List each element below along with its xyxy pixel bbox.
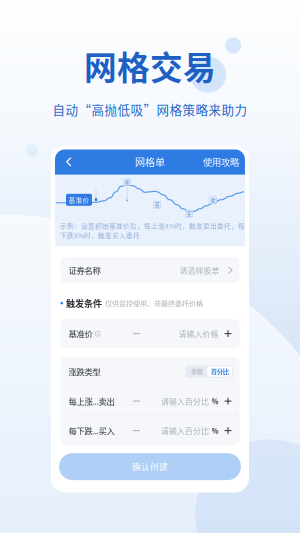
staticText: 基准价 (68, 195, 89, 205)
staticText: 网格交易 (84, 42, 216, 89)
button[interactable]: Increase 每上涨...卖出 (218, 391, 237, 411)
button[interactable]: 使用攻略 (203, 152, 239, 172)
staticText: 请输入价格 (178, 328, 218, 339)
button[interactable]: 确认创建 (59, 453, 241, 480)
button[interactable]: Increase 每下跌...买入 (218, 421, 237, 441)
staticText: 证券名称 (68, 264, 100, 276)
staticText: % (211, 425, 218, 436)
staticText: 网格单 (135, 154, 165, 169)
staticText: 触发条件 (66, 296, 102, 310)
button[interactable]: 金额 (186, 367, 207, 377)
button[interactable]: 百分比 (207, 367, 232, 377)
staticText: 仅供监控使用，非最终委托价格 (105, 298, 203, 308)
staticText: 每下跌...买入 (68, 424, 114, 437)
button[interactable]: Increase 基准价 (218, 324, 237, 344)
staticText: 卖 (124, 178, 129, 186)
staticText: 确认创建 (132, 460, 168, 473)
button[interactable]: Decrease 基准价 (127, 324, 145, 344)
staticText: 买 (154, 201, 159, 209)
button[interactable]: Decrease 每上涨...卖出 (127, 391, 145, 411)
staticText: 自动“高抛低吸”网格策略来助力 (52, 100, 247, 118)
staticText: 请输入百分比 (161, 425, 209, 436)
staticText: 请输入百分比 (161, 395, 209, 407)
button[interactable]: Decrease 每下跌...买入 (127, 421, 145, 441)
staticText: 使用攻略 (203, 155, 239, 168)
staticText: 涨跌类型 (68, 365, 100, 378)
button[interactable]: Back (61, 152, 77, 172)
staticText: 百分比 (211, 367, 229, 376)
staticText: 请选择股票 (179, 264, 219, 276)
staticText: 示例：设置初始基准价后，每上涨X%时，触发卖出委托，每下跌X%时，触发买入委托 (60, 221, 245, 240)
staticText: 每上涨...卖出 (68, 395, 114, 407)
staticText: 金额 (191, 367, 203, 376)
staticText: 卖 (210, 196, 215, 204)
staticText: % (211, 396, 218, 406)
staticText: 买 (186, 210, 191, 218)
button[interactable]: 证券名称 (60, 257, 239, 283)
staticText: 基准价 (68, 327, 92, 340)
